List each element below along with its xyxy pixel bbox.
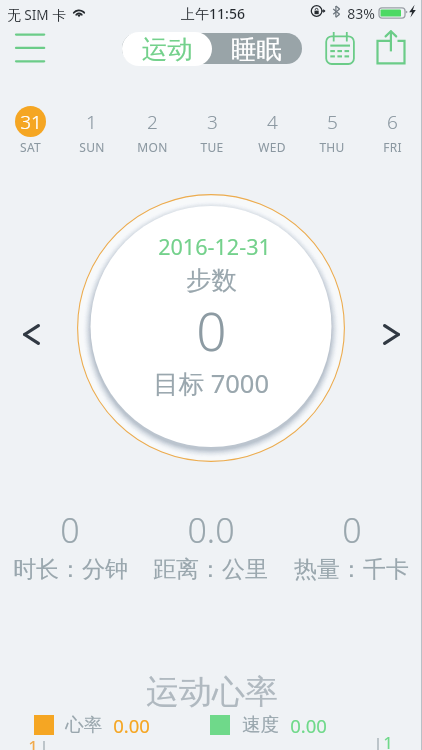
staticText: 0.0 — [187, 507, 235, 553]
staticText: 0.00 — [113, 713, 150, 738]
staticText: 心率 — [65, 713, 102, 736]
staticText: 热量：千卡 — [294, 555, 409, 584]
button[interactable]: 2 — [122, 106, 182, 155]
staticText: 上午11:56 — [181, 4, 245, 23]
staticText: 3 — [207, 109, 218, 135]
button[interactable]: 5 — [302, 106, 362, 155]
button[interactable]: 6 — [362, 106, 422, 155]
button[interactable]: 1 — [61, 106, 122, 155]
button[interactable]: 4 — [242, 106, 302, 155]
staticText: FRI — [383, 139, 402, 155]
button[interactable]: Previous day — [8, 311, 54, 357]
staticText: 无 SIM 卡 — [7, 5, 66, 24]
staticText: THU — [319, 139, 345, 155]
staticText: 运动 — [142, 33, 193, 65]
button[interactable]: 运动 — [122, 32, 212, 66]
staticText: 2 — [147, 109, 158, 135]
staticText: TUE — [200, 139, 224, 155]
staticText: 运动心率 — [146, 671, 278, 713]
staticText: WED — [258, 139, 286, 155]
button[interactable]: Share — [369, 26, 413, 70]
staticText: 步数 — [186, 264, 237, 296]
staticText: 4 — [267, 109, 278, 135]
staticText: 距离：公里 — [153, 555, 268, 584]
staticText: 0 — [60, 507, 80, 553]
staticText: 0 — [342, 507, 362, 553]
staticText: SUN — [79, 139, 105, 155]
button[interactable]: Menu — [4, 24, 56, 72]
button[interactable]: 31 — [0, 106, 61, 155]
staticText: 2016-12-31 — [158, 232, 271, 261]
staticText: SAT — [20, 139, 41, 155]
staticText: 1 — [86, 109, 97, 135]
staticText: 5 — [327, 109, 338, 135]
staticText: 83% — [347, 4, 375, 23]
staticText: 1 — [28, 735, 38, 750]
staticText: 睡眠 — [231, 33, 282, 64]
staticText: 1 — [383, 731, 393, 750]
staticText: 目标 7000 — [153, 366, 269, 401]
button[interactable]: Next day — [368, 311, 414, 357]
staticText: 速度 — [242, 713, 279, 736]
button[interactable]: 睡眠 — [211, 33, 302, 64]
staticText: MON — [137, 139, 168, 155]
staticText: 时长：分钟 — [13, 555, 128, 584]
staticText: 0 — [196, 294, 227, 366]
staticText: 0.00 — [290, 713, 327, 738]
button[interactable]: 3 — [182, 106, 242, 155]
staticText: 31 — [20, 109, 42, 135]
button[interactable]: Calendar — [318, 26, 362, 70]
staticText: 6 — [387, 109, 398, 135]
